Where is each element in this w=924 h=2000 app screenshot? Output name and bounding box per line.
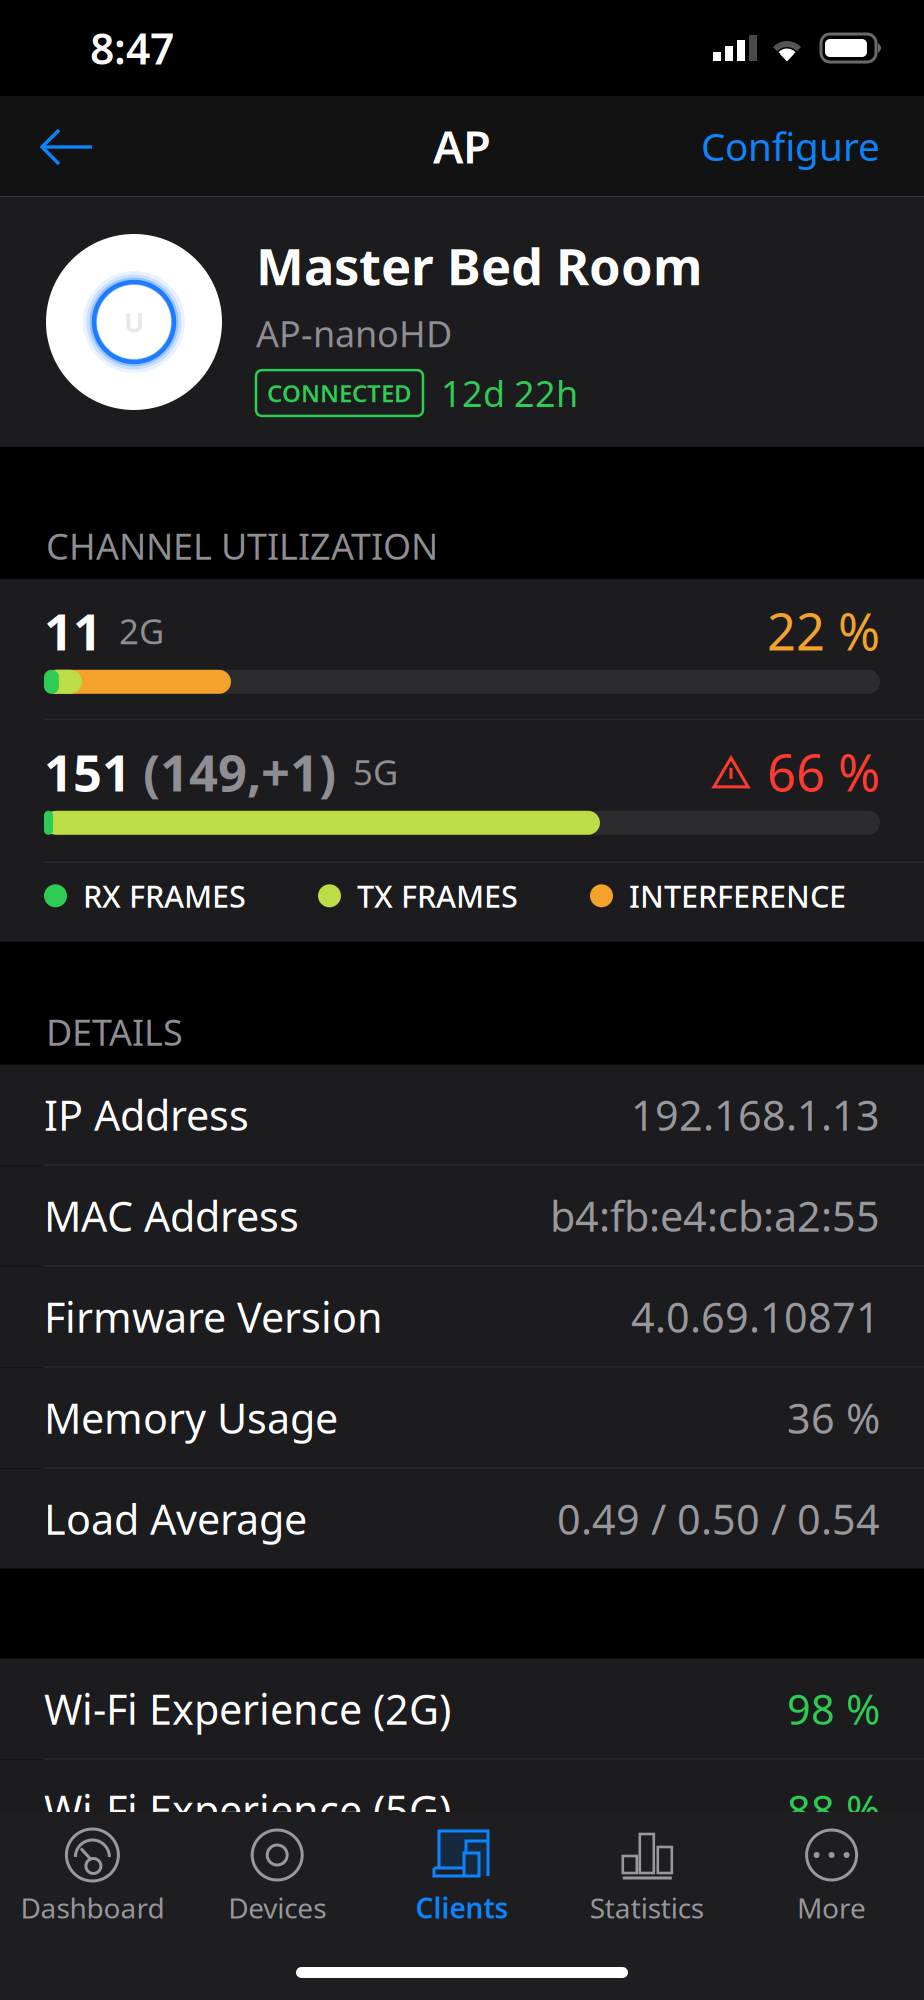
button[interactable]: Statistics <box>554 1827 739 1926</box>
staticText: RX FRAMES <box>83 875 246 916</box>
button[interactable]: More <box>739 1827 924 1926</box>
staticText: 192.168.1.13 <box>631 1087 880 1142</box>
staticText: Firmware Version <box>44 1289 383 1344</box>
staticText: 4.0.69.10871 <box>631 1289 880 1344</box>
button[interactable]: Devices <box>185 1827 370 1926</box>
staticText: TX FRAMES <box>357 875 518 916</box>
staticText: Statistics <box>590 1889 704 1926</box>
staticText: More <box>797 1889 866 1926</box>
staticText: Devices <box>228 1889 326 1926</box>
staticText: 88 % <box>787 1782 880 1837</box>
staticText: 0.49 / 0.50 / 0.54 <box>557 1491 880 1546</box>
staticText: Wi-Fi Experience (5G) <box>44 1782 451 1837</box>
staticText: Memory Usage <box>44 1390 338 1445</box>
staticText: CONNECTED <box>267 377 412 409</box>
staticText: AP <box>433 116 491 176</box>
staticText: 36 % <box>787 1390 880 1445</box>
staticText: Master Bed Room <box>256 232 702 299</box>
staticText: b4:fb:e4:cb:a2:55 <box>550 1188 880 1243</box>
staticText: 8:47 <box>90 20 174 76</box>
staticText: 12d 22h <box>441 369 578 417</box>
staticText: CHANNEL UTILIZATION <box>46 522 438 570</box>
button[interactable]: Configure <box>679 102 902 190</box>
staticText: Wi-Fi Experience (2G) <box>44 1681 451 1736</box>
staticText: U <box>124 304 144 340</box>
staticText: 98 % <box>787 1681 880 1736</box>
staticText: AP-nanoHD <box>256 309 452 357</box>
staticText: 11 <box>44 597 102 664</box>
staticText: 151 <box>44 738 131 805</box>
staticText: INTERFERENCE <box>629 875 846 916</box>
staticText: 66 % <box>767 738 880 805</box>
staticText: Dashboard <box>20 1889 164 1926</box>
button[interactable]: Clients <box>370 1827 554 1926</box>
staticText: Configure <box>701 120 880 172</box>
staticText: MAC Address <box>44 1188 299 1243</box>
staticText: DETAILS <box>46 1008 183 1056</box>
staticText: 22 % <box>767 597 880 664</box>
button[interactable]: Back <box>22 104 112 188</box>
staticText: 5G <box>353 749 398 795</box>
button[interactable]: Dashboard <box>0 1827 185 1926</box>
staticText: (149,+1) <box>143 738 336 805</box>
staticText: IP Address <box>44 1087 249 1142</box>
staticText: Clients <box>415 1889 508 1926</box>
staticText: 2G <box>119 608 164 654</box>
staticText: Load Average <box>44 1491 307 1546</box>
